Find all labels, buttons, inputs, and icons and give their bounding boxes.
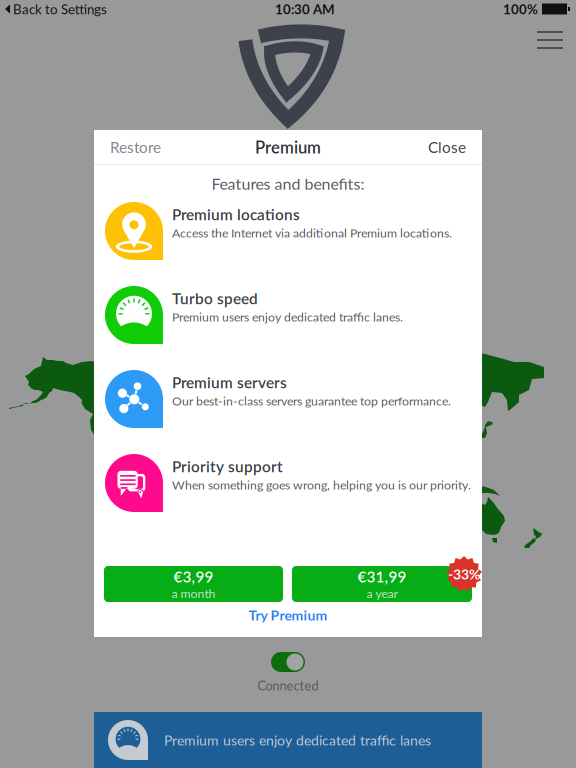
staticText: Close [428, 138, 466, 156]
staticText: Connected [257, 678, 318, 693]
staticText: Priority support [172, 457, 283, 475]
staticText: 10:30 AM [275, 1, 335, 17]
staticText: a month [171, 586, 215, 600]
staticText: Premium locations [172, 205, 300, 223]
staticText: Premium [255, 137, 321, 157]
staticText: Restore [110, 138, 161, 156]
button[interactable]: €3,99 [104, 566, 283, 602]
staticText: €3,99 [173, 567, 213, 586]
staticText: 100% [503, 1, 538, 17]
staticText: Access the Internet via additional Premi… [172, 225, 452, 240]
button[interactable]: VPN connection, on [271, 652, 305, 672]
staticText: Premium users enjoy dedicated traffic la… [172, 309, 403, 324]
button[interactable]: Menu [526, 20, 574, 60]
staticText: -33% [448, 566, 480, 582]
staticText: Our best-in-class servers guarantee top … [172, 393, 451, 408]
button[interactable]: €31,99 [292, 566, 472, 602]
button[interactable]: Restore [94, 130, 220, 164]
staticText: Try Premium [248, 607, 327, 623]
staticText: Back to Settings [13, 1, 107, 17]
staticText: When something goes wrong, helping you i… [172, 477, 471, 492]
staticText: Premium servers [172, 373, 287, 391]
staticText: a year [366, 586, 397, 600]
button[interactable]: Close [356, 130, 482, 164]
button[interactable]: Back to Settings [0, 0, 107, 20]
staticText: Premium users enjoy dedicated traffic la… [164, 732, 431, 748]
staticText: Features and benefits: [211, 174, 364, 193]
staticText: €31,99 [357, 567, 406, 586]
button[interactable]: Try Premium [94, 602, 482, 628]
staticText: Turbo speed [172, 289, 258, 307]
